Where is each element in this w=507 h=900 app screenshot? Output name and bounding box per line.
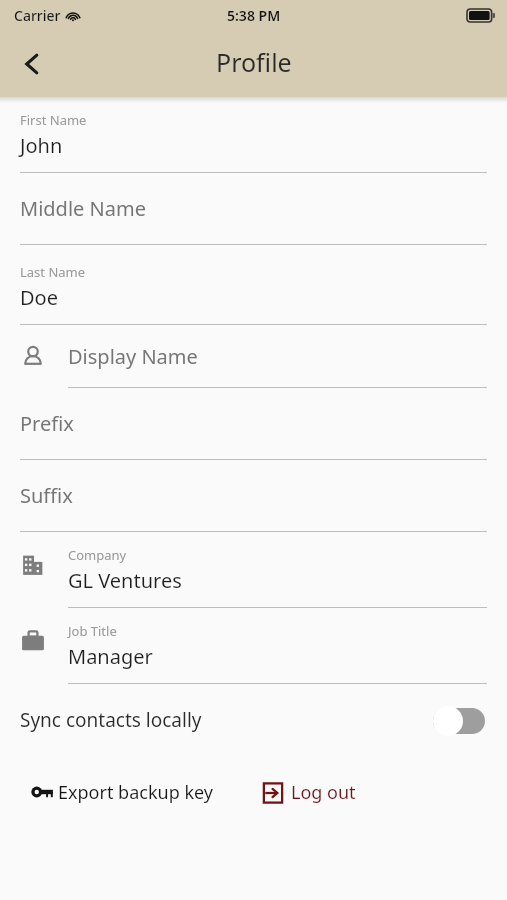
- staticText: Profile: [216, 45, 292, 79]
- staticText: Display Name: [68, 343, 198, 370]
- staticText: GL Ventures: [68, 567, 182, 594]
- staticText: First Name: [20, 111, 87, 129]
- button[interactable]: Export backup key: [0, 779, 253, 805]
- button[interactable]: Suffix: [0, 460, 507, 532]
- staticText: Prefix: [20, 410, 74, 437]
- button[interactable]: Display Name: [0, 325, 507, 388]
- button[interactable]: Company: [0, 532, 507, 608]
- button[interactable]: Back: [6, 38, 58, 90]
- staticText: John: [20, 132, 63, 159]
- staticText: Manager: [68, 643, 153, 670]
- button[interactable]: Last Name: [0, 245, 507, 325]
- staticText: Middle Name: [20, 195, 146, 222]
- staticText: Last Name: [20, 263, 86, 281]
- staticText: Carrier: [14, 6, 61, 25]
- button[interactable]: Log out: [253, 780, 507, 805]
- staticText: 5:38 PM: [227, 6, 281, 25]
- button[interactable]: Prefix: [0, 388, 507, 460]
- staticText: Sync contacts locally: [20, 707, 202, 733]
- staticText: Suffix: [20, 482, 73, 509]
- button[interactable]: First Name: [0, 97, 507, 173]
- button[interactable]: Middle Name: [0, 173, 507, 245]
- button[interactable]: Job Title: [0, 608, 507, 684]
- staticText: Doe: [20, 284, 58, 311]
- staticText: Company: [68, 546, 127, 564]
- staticText: Job Title: [68, 622, 117, 640]
- staticText: Log out: [291, 780, 356, 805]
- button[interactable]: Sync contacts locally: [0, 684, 507, 756]
- staticText: Export backup key: [58, 780, 213, 805]
